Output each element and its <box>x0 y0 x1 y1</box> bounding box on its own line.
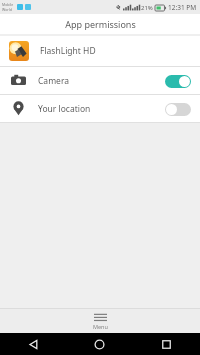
other: Location <box>11 101 26 116</box>
button[interactable]: Back <box>0 333 66 355</box>
button[interactable]: Menu <box>0 309 200 333</box>
other: Menu <box>94 313 107 322</box>
button[interactable]: Home <box>66 333 133 355</box>
button[interactable]: Off <box>165 102 191 116</box>
button[interactable]: FlashLight HD <box>0 36 200 66</box>
staticText: App permissions <box>65 18 136 30</box>
staticText: FlashLight HD <box>40 45 96 57</box>
staticText: World <box>2 7 12 12</box>
button[interactable]: Recents <box>133 333 200 355</box>
button[interactable]: Location <box>0 95 200 122</box>
staticText: Menu <box>93 323 108 330</box>
button[interactable]: On <box>165 74 191 88</box>
staticText: Mobile <box>2 2 14 7</box>
staticText: 21% <box>141 4 153 12</box>
button[interactable]: Camera <box>0 67 200 94</box>
staticText: Your location <box>38 103 165 115</box>
other: Camera <box>11 73 26 88</box>
staticText: Camera <box>38 75 165 87</box>
staticText: 12:31 PM <box>168 3 197 12</box>
